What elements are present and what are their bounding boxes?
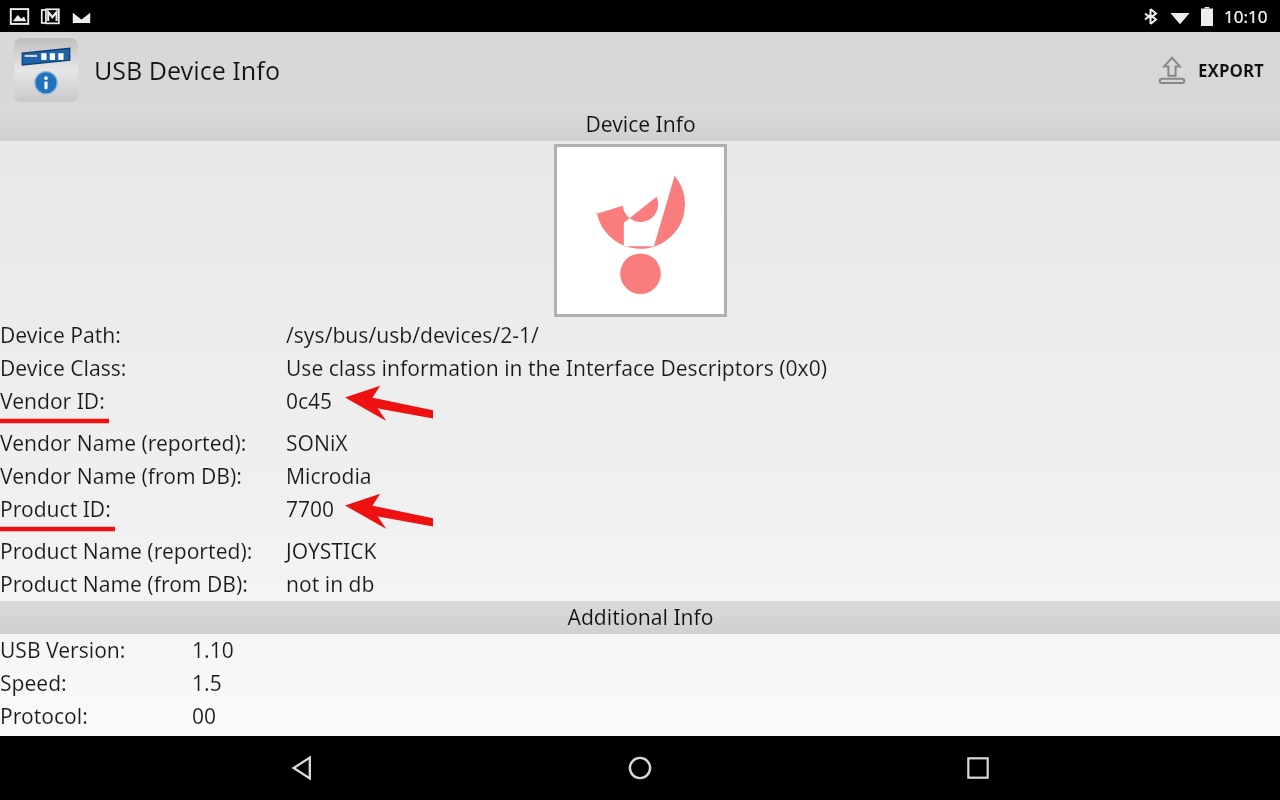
staticText: USB Device Info	[94, 53, 281, 87]
button[interactable]: App icon	[14, 38, 78, 102]
staticText: Use class information in the Interface D…	[286, 354, 827, 383]
button[interactable]: Device Path:	[0, 319, 1280, 352]
staticText: Product ID:	[0, 495, 111, 524]
staticText: Vendor Name (reported):	[0, 429, 247, 458]
button[interactable]: Speed:	[0, 667, 1280, 700]
button[interactable]: Vendor ID:	[0, 385, 1280, 418]
staticText: 00	[192, 702, 217, 731]
staticText: Vendor Name (from DB):	[0, 462, 242, 491]
button[interactable]: Protocol:	[0, 700, 1280, 733]
staticText: EXPORT	[1198, 59, 1264, 82]
staticText: Speed:	[0, 669, 67, 698]
staticText: Protocol:	[0, 702, 88, 731]
staticText: Device Info	[585, 110, 696, 139]
staticText: 7700	[286, 495, 335, 524]
button[interactable]: Product ID:	[0, 493, 1280, 526]
button[interactable]: Device Class:	[0, 352, 1280, 385]
staticText: 10:10	[1224, 5, 1268, 28]
button[interactable]: Product Name (reported):	[0, 535, 1280, 568]
button[interactable]: Product Name (from DB):	[0, 568, 1280, 601]
staticText: Microdia	[286, 462, 372, 491]
staticText: 1.5	[192, 669, 222, 698]
staticText: Device Class:	[0, 354, 127, 383]
staticText: SONiX	[286, 429, 348, 458]
staticText: Device Path:	[0, 321, 121, 350]
staticText: Product Name (reported):	[0, 537, 253, 566]
button[interactable]: USB Version:	[0, 634, 1280, 667]
button[interactable]: Recent apps	[942, 736, 1014, 800]
staticText: Product Name (from DB):	[0, 570, 248, 599]
button[interactable]: Vendor Name (from DB):	[0, 460, 1280, 493]
staticText: not in db	[286, 570, 375, 599]
staticText: Additional Info	[567, 603, 714, 632]
staticText: JOYSTICK	[286, 537, 377, 566]
staticText: 1.10	[192, 636, 234, 665]
button[interactable]: Back	[266, 736, 338, 800]
staticText: Vendor ID:	[0, 387, 105, 416]
button[interactable]: Home	[604, 736, 676, 800]
button[interactable]: Export	[1146, 46, 1272, 94]
staticText: /sys/bus/usb/devices/2-1/	[286, 321, 539, 350]
staticText: USB Version:	[0, 636, 126, 665]
button[interactable]: Vendor Name (reported):	[0, 427, 1280, 460]
staticText: 0c45	[286, 387, 333, 416]
